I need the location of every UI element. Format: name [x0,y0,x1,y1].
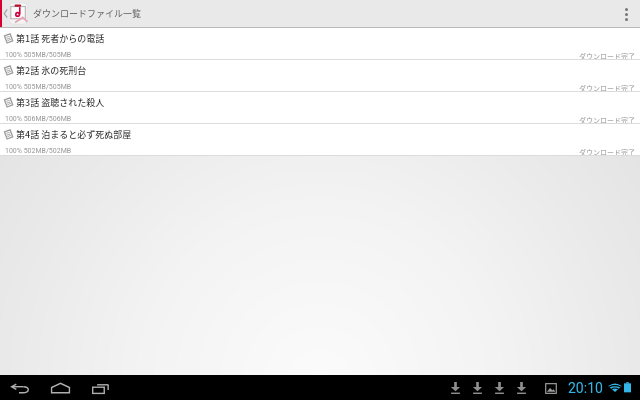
button[interactable]: 第3話 盗聴された殺人 [0,92,640,124]
staticText: 100% 505MB/505MB [5,51,72,59]
button[interactable]: 第1話 死者からの電話 [0,28,640,60]
staticText: ダウンロード完了 [579,115,635,125]
staticText: ダウンロード完了 [579,51,635,61]
staticText: 第3話 盗聴された殺人 [16,96,105,109]
button[interactable]: Recent apps [85,375,115,400]
button[interactable]: Back [5,375,35,400]
staticText: ダウンロードファイル一覧 [33,7,142,20]
button[interactable]: More options [612,0,640,28]
button[interactable]: Navigate up [2,0,29,28]
staticText: 100% 502MB/502MB [5,147,72,155]
button[interactable]: 第4話 泊まると必ず死ぬ部屋 [0,124,640,156]
staticText: ダウンロード完了 [579,147,635,157]
staticText: 第2話 氷の死刑台 [16,64,87,77]
staticText: 第1話 死者からの電話 [16,32,105,45]
staticText: 20:10 [568,380,603,396]
staticText: ダウンロード完了 [579,83,635,93]
staticText: 100% 506MB/506MB [5,115,72,123]
button[interactable]: 第2話 氷の死刑台 [0,60,640,92]
button[interactable]: Home [45,375,75,400]
staticText: 第4話 泊まると必ず死ぬ部屋 [16,128,132,141]
staticText: 100% 505MB/505MB [5,83,72,91]
